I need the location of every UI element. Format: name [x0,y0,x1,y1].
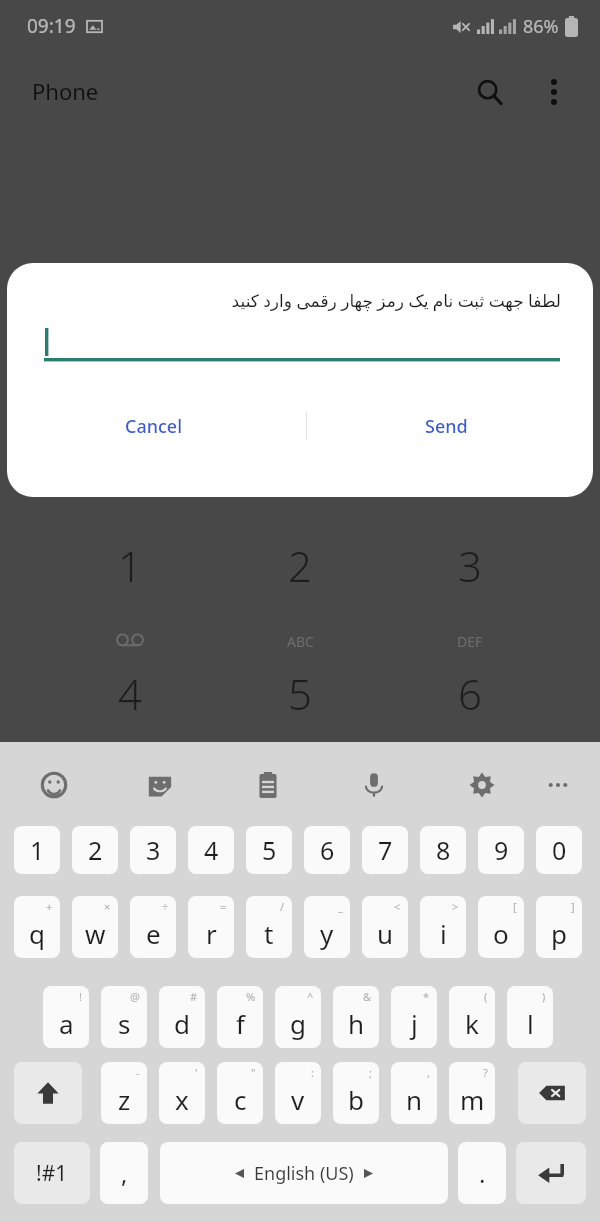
staticText: i [440,916,447,951]
staticText: f [236,1006,245,1041]
staticText: ! [79,989,82,1004]
button[interactable]: Cancel [7,400,300,452]
button[interactable]: 4 [188,826,234,874]
staticText: !#1 [36,1159,68,1188]
button[interactable]: . [458,1142,506,1204]
button[interactable]: 5 [245,653,355,733]
staticText: 5 [262,833,277,867]
staticText: _ [338,899,343,914]
button[interactable]: Space, English (US) [160,1142,448,1204]
button[interactable]: % [217,986,263,1048]
staticText: 8 [436,833,451,867]
staticText: r [206,916,217,951]
button[interactable]: @ [101,986,147,1048]
button[interactable]: ( [449,986,495,1048]
staticText: < [394,899,401,914]
button[interactable]: 0 [536,826,582,874]
staticText: " [251,1065,256,1080]
staticText: x [175,1082,189,1117]
button[interactable]: > [420,896,466,958]
staticText: 3 [458,537,482,594]
staticText: 2 [288,537,312,594]
button[interactable]: Clipboard [246,763,290,807]
staticText: 6 [458,665,482,722]
staticText: e [146,916,161,951]
button[interactable]: + [14,896,60,958]
staticText: m [460,1082,485,1117]
button[interactable]: Symbols [14,1142,90,1204]
button[interactable]: # [159,986,205,1048]
button[interactable]: 2 [72,826,118,874]
button[interactable]: Backspace [518,1062,586,1124]
staticText: d [174,1006,190,1041]
staticText: j [411,1006,418,1041]
button[interactable]: 9 [478,826,524,874]
button[interactable]: * [391,986,437,1048]
staticText: ^ [307,989,314,1004]
button[interactable]: 3 [415,525,525,605]
button[interactable]: 1 [75,525,185,605]
staticText: 4 [118,665,142,722]
button[interactable]: 6 [415,653,525,733]
button[interactable]: ) [507,986,553,1048]
staticText: s [118,1006,131,1041]
staticText: Phone [32,76,99,106]
button[interactable]: 7 [362,826,408,874]
button[interactable]: - [101,1062,147,1124]
button[interactable]: 5 [246,826,292,874]
button[interactable]: 6 [304,826,350,874]
button[interactable]: Enter [516,1142,586,1204]
button[interactable]: Keyboard settings [460,763,504,807]
staticText: 6 [320,833,335,867]
button[interactable]: & [333,986,379,1048]
button[interactable]: Stickers [138,763,182,807]
staticText: o [493,916,509,951]
button[interactable]: _ [304,896,350,958]
staticText: 09:19 [27,13,76,39]
button[interactable]: More [536,763,580,807]
button[interactable]: [ [478,896,524,958]
button[interactable]: : [275,1062,321,1124]
button[interactable]: 8 [420,826,466,874]
staticText: 2 [88,833,103,867]
button[interactable]: " [217,1062,263,1124]
staticText: g [290,1006,306,1041]
button[interactable] [41,326,560,366]
button[interactable]: Shift [14,1062,82,1124]
button[interactable]: ; [333,1062,379,1124]
button[interactable]: 1 [14,826,60,874]
staticText: Cancel [125,414,183,439]
staticText: DEF [457,632,483,651]
staticText: h [348,1006,365,1041]
button[interactable]: 2 [245,525,355,605]
staticText: z [118,1082,131,1117]
staticText: # [190,989,198,1004]
button[interactable]: 4 [75,653,185,733]
button[interactable]: ! [43,986,89,1048]
button[interactable]: ' [159,1062,205,1124]
staticText: ÷ [162,899,169,914]
button[interactable]: 3 [130,826,176,874]
button[interactable]: , [391,1062,437,1124]
button[interactable]: Voice input [352,763,396,807]
button[interactable]: , [100,1142,148,1204]
button[interactable]: ? [449,1062,495,1124]
button[interactable]: ] [536,896,582,958]
button[interactable]: Send [300,400,593,452]
button[interactable]: ^ [275,986,321,1048]
staticText: > [452,899,459,914]
staticText: ) [542,989,546,1004]
button[interactable]: / [246,896,292,958]
staticText: Send [425,414,468,439]
button[interactable]: ÷ [130,896,176,958]
button[interactable]: Phone [22,70,109,112]
button[interactable]: < [362,896,408,958]
staticText: & [363,989,372,1004]
button[interactable]: Emoji [32,763,76,807]
staticText: b [348,1082,364,1117]
button[interactable]: = [188,896,234,958]
button[interactable]: Search [464,66,516,118]
button[interactable]: More options [528,66,580,118]
button[interactable]: × [72,896,118,958]
staticText: c [234,1082,247,1117]
